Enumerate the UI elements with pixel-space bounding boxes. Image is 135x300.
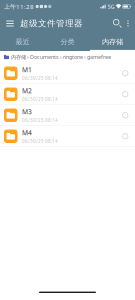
staticText: 06/30/25 08:14: [22, 138, 58, 144]
button[interactable]: Search: [113, 19, 122, 28]
staticText: 最近: [15, 37, 29, 46]
staticText: M4: [22, 128, 32, 137]
staticText: M2: [22, 86, 32, 95]
button[interactable]: Menu: [4, 16, 16, 30]
staticText: 06/30/25 08:14: [22, 75, 58, 81]
button[interactable]: 最近: [0, 34, 45, 51]
button[interactable]: M3: [0, 105, 135, 126]
staticText: 06/30/25 08:14: [22, 117, 58, 123]
staticText: 超级文件管理器: [20, 18, 83, 29]
staticText: M1: [22, 65, 32, 74]
button[interactable]: M4: [0, 126, 135, 147]
staticText: 分类: [60, 37, 74, 46]
staticText: 5G: [107, 3, 114, 10]
staticText: 内存储: [102, 37, 123, 46]
staticText: M3: [22, 107, 32, 116]
staticText: 内存储 › Documents › ringtone › gamefree: [11, 53, 111, 61]
staticText: 06/30/25 08:14: [22, 96, 58, 102]
button[interactable]: 内存储: [90, 34, 135, 51]
staticText: 上午11:28: [4, 2, 34, 11]
button[interactable]: 分类: [45, 34, 90, 51]
button[interactable]: M2: [0, 84, 135, 105]
button[interactable]: More options: [124, 18, 132, 29]
button[interactable]: M1: [0, 63, 135, 84]
